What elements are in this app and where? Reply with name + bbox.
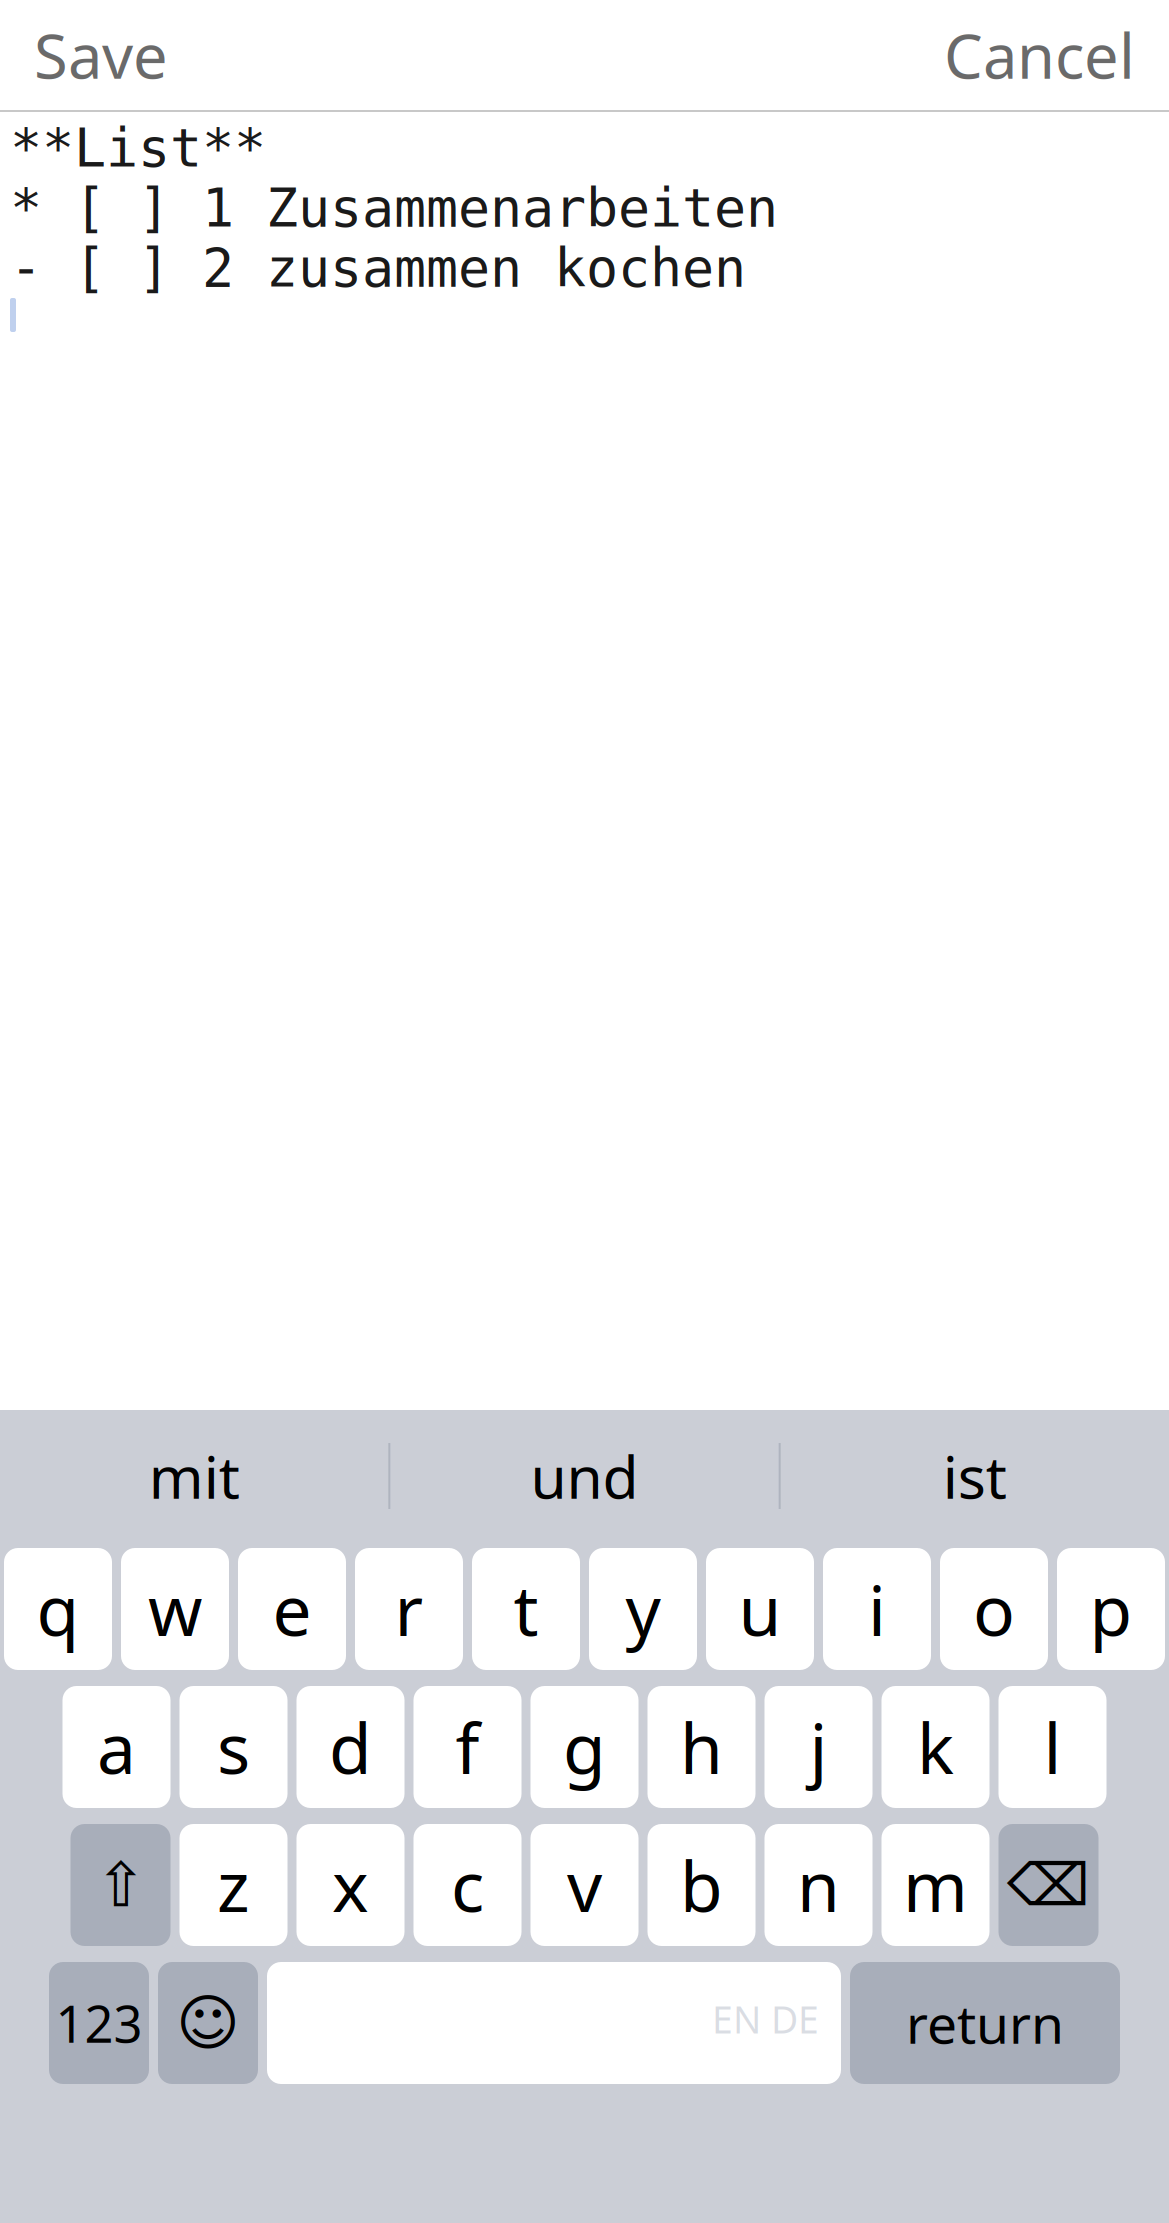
staticText: e <box>272 1563 311 1655</box>
staticText: und <box>530 1437 638 1515</box>
staticText: * [ ] 1 Zusammenarbeiten <box>10 178 778 238</box>
staticText: b <box>680 1839 723 1931</box>
staticText: ⌫ <box>1007 1852 1090 1918</box>
button[interactable]: ist <box>781 1428 1169 1524</box>
staticText: return <box>906 1988 1064 2058</box>
button[interactable]: Delete <box>998 1824 1098 1946</box>
staticText: f <box>455 1701 479 1793</box>
staticText: **List** <box>10 118 266 178</box>
button[interactable]: e <box>238 1548 346 1670</box>
button[interactable]: Cancel <box>910 0 1169 116</box>
button[interactable]: l <box>998 1686 1106 1808</box>
staticText: h <box>680 1701 723 1793</box>
button[interactable]: q <box>4 1548 112 1670</box>
staticText: d <box>329 1701 372 1793</box>
button[interactable]: und <box>390 1428 779 1524</box>
button[interactable]: z <box>179 1824 287 1946</box>
button[interactable]: Numbers <box>49 1962 149 2084</box>
staticText: c <box>451 1839 484 1931</box>
button[interactable]: t <box>472 1548 580 1670</box>
button[interactable]: c <box>413 1824 521 1946</box>
staticText: v <box>567 1839 602 1931</box>
button[interactable]: return <box>850 1962 1120 2084</box>
staticText: n <box>797 1839 840 1931</box>
staticText: Cancel <box>944 14 1135 96</box>
staticText: j <box>809 1701 827 1793</box>
staticText: a <box>97 1701 136 1793</box>
staticText: p <box>1089 1563 1132 1655</box>
button[interactable]: w <box>121 1548 229 1670</box>
button[interactable]: o <box>940 1548 1048 1670</box>
staticText: l <box>1043 1701 1061 1793</box>
button[interactable]: n <box>764 1824 872 1946</box>
staticText: t <box>513 1563 538 1655</box>
button[interactable]: f <box>413 1686 521 1808</box>
button[interactable]: p <box>1057 1548 1165 1670</box>
button[interactable]: g <box>530 1686 638 1808</box>
button[interactable]: v <box>530 1824 638 1946</box>
button[interactable]: k <box>881 1686 989 1808</box>
staticText: i <box>868 1563 886 1655</box>
button[interactable]: r <box>355 1548 463 1670</box>
button[interactable]: b <box>647 1824 755 1946</box>
staticText: - [ ] 2 zusammen kochen <box>10 238 746 298</box>
staticText: w <box>148 1563 202 1655</box>
staticText: Save <box>34 14 168 96</box>
staticText: ⇧ <box>95 1850 146 1920</box>
staticText: o <box>973 1563 1015 1655</box>
staticText: k <box>917 1701 954 1793</box>
button[interactable]: Save <box>0 0 202 116</box>
staticText: 123 <box>55 1989 142 2057</box>
staticText: ☺ <box>176 1988 240 2058</box>
button[interactable]: h <box>647 1686 755 1808</box>
button[interactable]: Space <box>267 1962 841 2084</box>
button[interactable]: m <box>881 1824 989 1946</box>
button[interactable]: mit <box>0 1428 388 1524</box>
staticText: mit <box>149 1437 240 1515</box>
staticText: m <box>903 1839 968 1931</box>
button[interactable]: u <box>706 1548 814 1670</box>
staticText: z <box>217 1839 250 1931</box>
button[interactable]: d <box>296 1686 404 1808</box>
staticText: g <box>563 1701 606 1793</box>
staticText: EN DE <box>712 1994 819 2044</box>
staticText: q <box>36 1563 79 1655</box>
button[interactable]: Emoji <box>158 1962 258 2084</box>
button[interactable]: s <box>179 1686 287 1808</box>
button[interactable]: y <box>589 1548 697 1670</box>
staticText: x <box>332 1839 369 1931</box>
staticText: ist <box>943 1437 1007 1515</box>
button[interactable]: x <box>296 1824 404 1946</box>
button[interactable]: a <box>62 1686 170 1808</box>
button[interactable]: Shift <box>70 1824 170 1946</box>
staticText: s <box>217 1701 250 1793</box>
button[interactable]: i <box>823 1548 931 1670</box>
staticText: u <box>738 1563 781 1655</box>
staticText: y <box>625 1563 660 1655</box>
button[interactable]: j <box>764 1686 872 1808</box>
staticText: r <box>394 1563 423 1655</box>
